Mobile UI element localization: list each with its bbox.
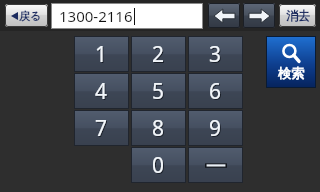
button[interactable]: 1 xyxy=(75,37,128,71)
button[interactable]: 検索 xyxy=(267,37,315,87)
staticText: 消去 xyxy=(286,8,310,23)
staticText: 8 xyxy=(153,115,166,144)
staticText: 6 xyxy=(210,78,223,107)
staticText: 1 xyxy=(96,41,109,70)
button[interactable]: 消去 xyxy=(279,4,316,27)
staticText: 6 xyxy=(209,77,222,106)
staticText: 1300-2116 xyxy=(59,6,133,26)
button[interactable]: 2 xyxy=(132,37,185,71)
staticText: 3 xyxy=(210,41,223,70)
staticText: 0 xyxy=(152,151,165,180)
button[interactable]: 戻る xyxy=(5,4,48,27)
staticText: 9 xyxy=(210,115,223,144)
staticText: 1 xyxy=(95,40,108,69)
button[interactable]: 1300-2116 xyxy=(52,4,202,28)
button[interactable]: 5 xyxy=(132,74,185,108)
button[interactable]: 7 xyxy=(75,111,128,145)
button[interactable]: Right xyxy=(243,3,275,28)
staticText: 7 xyxy=(96,115,109,144)
staticText: 5 xyxy=(152,77,165,106)
button[interactable] xyxy=(189,148,242,182)
staticText: 9 xyxy=(209,114,222,143)
staticText: 8 xyxy=(152,114,165,143)
staticText: 3 xyxy=(209,40,222,69)
staticText: 7 xyxy=(95,114,108,143)
button[interactable]: 0 xyxy=(132,148,185,182)
staticText: 4 xyxy=(95,77,108,106)
staticText: 検索 xyxy=(278,65,304,81)
button[interactable]: 4 xyxy=(75,74,128,108)
button[interactable]: 8 xyxy=(132,111,185,145)
button[interactable]: Left xyxy=(208,3,240,28)
button[interactable]: 6 xyxy=(189,74,242,108)
staticText: 2 xyxy=(153,41,166,70)
staticText: 5 xyxy=(153,78,166,107)
button[interactable]: 3 xyxy=(189,37,242,71)
staticText: 4 xyxy=(96,78,109,107)
staticText: 2 xyxy=(152,40,165,69)
staticText: 0 xyxy=(153,152,166,181)
staticText: 戻る xyxy=(19,9,42,23)
button[interactable]: 9 xyxy=(189,111,242,145)
